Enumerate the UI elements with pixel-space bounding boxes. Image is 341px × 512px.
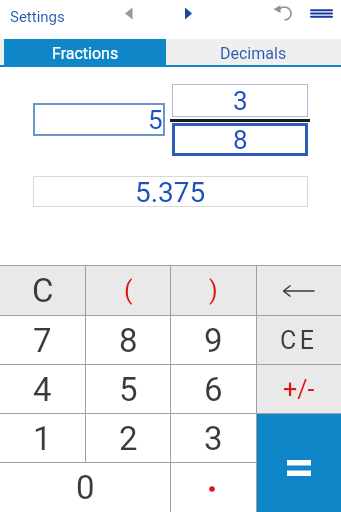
staticText: 6 [204, 370, 223, 409]
staticText: Fractions [52, 44, 119, 63]
button[interactable] [303, 0, 341, 33]
button[interactable]: Settings [6, 8, 69, 26]
button[interactable]: ( [86, 266, 170, 315]
staticText: Settings [10, 8, 65, 26]
button[interactable] [171, 463, 256, 512]
staticText: 5 [148, 105, 163, 135]
staticText: 2 [119, 419, 138, 458]
staticText: 3 [233, 86, 248, 116]
staticText: 9 [204, 321, 223, 360]
staticText: ( [124, 276, 133, 305]
button[interactable] [257, 414, 341, 512]
button[interactable]: 1 [0, 414, 85, 462]
button[interactable]: 5 [86, 365, 170, 413]
button[interactable]: ) [171, 266, 256, 315]
button[interactable]: 3 [172, 84, 308, 117]
staticText: ) [209, 276, 218, 305]
button[interactable]: 8 [172, 123, 308, 156]
staticText: 0 [76, 468, 95, 507]
staticText: C [32, 271, 54, 310]
button[interactable]: +/- [257, 365, 341, 413]
button[interactable] [112, 0, 142, 33]
staticText: CE [280, 326, 318, 355]
staticText: Decimals [220, 44, 287, 63]
staticText: 7 [33, 321, 52, 360]
staticText: 8 [119, 321, 138, 360]
button[interactable]: CE [257, 316, 341, 364]
button[interactable] [175, 0, 205, 33]
button[interactable]: 9 [171, 316, 256, 364]
staticText: 1 [33, 419, 52, 458]
button[interactable]: 7 [0, 316, 85, 364]
button[interactable]: C [0, 266, 85, 315]
button[interactable]: Fractions [4, 39, 166, 67]
button[interactable]: 8 [86, 316, 170, 364]
button[interactable]: 2 [86, 414, 170, 462]
staticText: 8 [233, 125, 248, 155]
button[interactable]: Decimals [166, 39, 341, 67]
staticText: 4 [33, 370, 52, 409]
button[interactable] [257, 266, 341, 315]
button[interactable] [268, 0, 300, 33]
button[interactable]: 3 [171, 414, 256, 462]
staticText: 5.375 [135, 176, 206, 207]
button[interactable]: 5 [33, 103, 165, 136]
button[interactable]: 6 [171, 365, 256, 413]
staticText: 5 [119, 370, 138, 409]
button[interactable]: 0 [0, 463, 170, 512]
staticText: +/- [283, 375, 315, 404]
button[interactable]: 4 [0, 365, 85, 413]
staticText: 3 [204, 419, 223, 458]
